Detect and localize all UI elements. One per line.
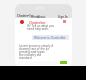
staticText: Bot xyxy=(29,14,35,18)
button[interactable]: Send xyxy=(60,61,67,64)
button[interactable]: Home xyxy=(31,15,40,19)
staticText: Welcome to ChatterBot xyxy=(34,36,66,40)
staticText: • xyxy=(28,14,30,18)
staticText: Chatterbot xyxy=(29,21,46,25)
staticText: Chatter xyxy=(17,14,29,18)
button[interactable]: About xyxy=(37,15,46,19)
button[interactable]: Welcome to ChatterBot xyxy=(32,35,69,40)
staticText: Lorem ipsum is simply d dummy text of th… xyxy=(19,44,54,60)
button[interactable]: Sign In xyxy=(58,15,68,19)
staticText: Hi! Tell us what you need help with. xyxy=(27,24,55,31)
